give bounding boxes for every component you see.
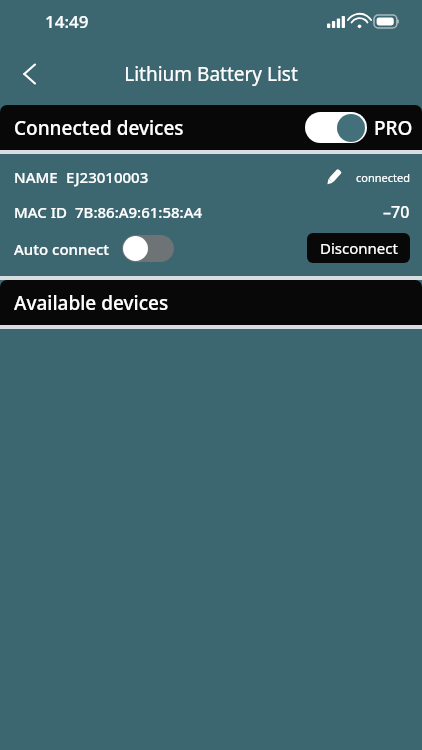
staticText: Available devices [14,290,169,316]
button[interactable]: MAC ID [0,195,422,229]
staticText: Auto connect [14,239,110,259]
button[interactable]: Auto connect [14,235,174,262]
staticText: MAC ID [14,202,67,222]
button[interactable]: NAME [0,159,422,195]
button[interactable]: Disconnect [307,233,410,263]
staticText: Connected devices [14,115,184,141]
button[interactable]: Auto connect off [122,235,174,262]
staticText: Disconnect [320,238,398,258]
staticText: –70 [383,201,410,223]
staticText: NAME [14,167,58,187]
button[interactable]: Edit name [319,162,349,192]
staticText: Lithium Battery List [124,61,298,87]
staticText: PRO [374,115,413,141]
button[interactable]: PRO mode on [305,112,367,143]
button[interactable]: Available devices [0,280,422,325]
staticText: 7B:86:A9:61:58:A4 [75,202,203,222]
button[interactable]: Back [10,55,48,93]
button[interactable]: Connected devices [0,105,422,150]
staticText: connected [356,170,410,185]
staticText: 14:49 [45,10,89,33]
staticText: EJ23010003 [66,167,149,187]
